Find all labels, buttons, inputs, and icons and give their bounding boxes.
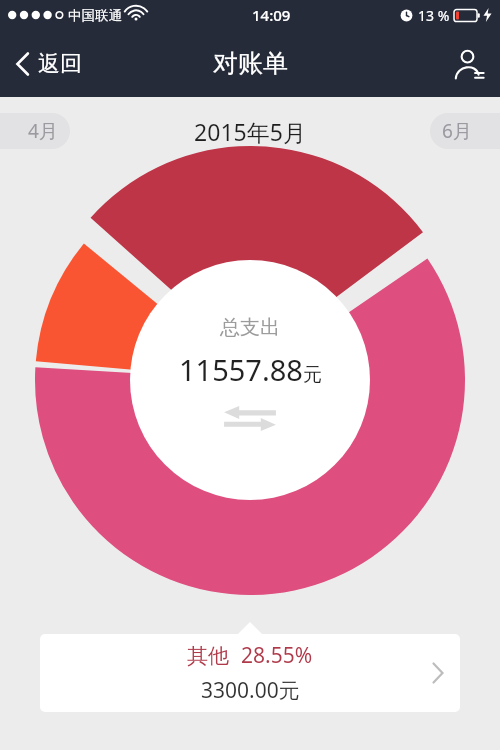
button[interactable]: 4月 [0, 113, 70, 149]
staticText: 3300.00元 [201, 676, 300, 705]
staticText: 中国联通 [68, 7, 122, 24]
staticText: 4月 [28, 118, 58, 144]
button[interactable]: 6月 [430, 113, 500, 149]
button[interactable]: 其他 [40, 634, 460, 712]
staticText: 元 [303, 363, 322, 387]
staticText: 对账单 [213, 48, 288, 79]
button[interactable]: Switch income expense [219, 401, 281, 435]
button[interactable]: Account [438, 41, 500, 87]
staticText: 28.55% [241, 641, 313, 670]
staticText: 总支出 [220, 315, 280, 340]
staticText: 14:09 [252, 5, 291, 25]
button[interactable]: 返回 [0, 42, 96, 86]
staticText: 返回 [38, 50, 82, 78]
staticText: 6月 [442, 118, 472, 144]
staticText: 13 % [418, 6, 450, 25]
staticText: 其他 [187, 643, 229, 669]
staticText: 11557.88 [179, 350, 303, 389]
staticText: 2015年5月 [194, 116, 306, 147]
